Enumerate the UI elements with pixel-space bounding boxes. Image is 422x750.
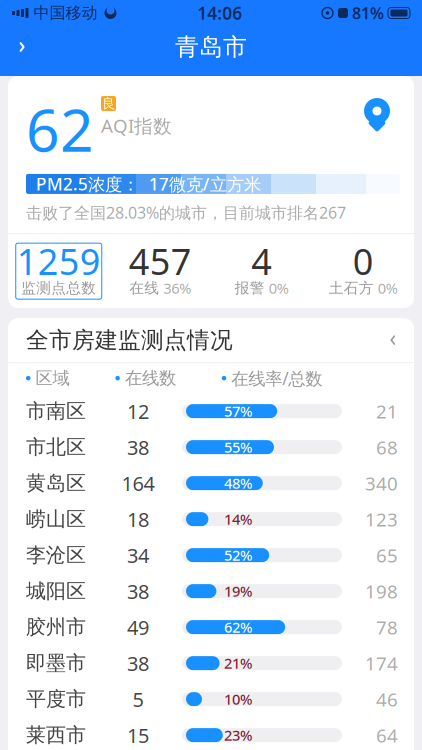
staticText: 良	[102, 95, 115, 112]
staticText: 4	[251, 237, 272, 285]
staticText: 457	[129, 237, 192, 285]
staticText: 18	[127, 506, 149, 532]
staticText: 340	[365, 471, 398, 496]
staticText: 崂山区	[26, 507, 86, 531]
staticText: PM2.5浓度： 17微克/立方米	[36, 172, 261, 195]
staticText: 土石方	[329, 279, 374, 297]
staticText: 81%	[352, 2, 384, 24]
staticText: 击败了全国28.03%的城市，目前城市排名267	[26, 202, 346, 223]
staticText: 即墨市	[26, 651, 86, 675]
staticText: 区域	[35, 367, 69, 389]
staticText: 市南区	[26, 399, 86, 423]
staticText: 15	[127, 722, 149, 748]
staticText: 198	[365, 579, 398, 604]
staticText: 城阳区	[26, 579, 86, 603]
staticText: 65	[376, 543, 398, 568]
staticText: 监测点总数	[21, 279, 96, 297]
staticText: 14:06	[197, 1, 242, 24]
staticText: 23%	[224, 725, 252, 745]
staticText: 52%	[224, 545, 252, 565]
staticText: 报警	[235, 279, 265, 297]
staticText: 1259	[17, 237, 101, 285]
staticText: 62	[26, 90, 94, 168]
staticText: 19%	[224, 581, 252, 601]
staticText: 21%	[224, 653, 252, 673]
staticText: 34	[127, 542, 149, 568]
staticText: 0%	[269, 278, 289, 298]
staticText: 14%	[224, 509, 252, 529]
staticText: 平度市	[26, 687, 86, 711]
staticText: 21	[376, 399, 398, 424]
staticText: 胶州市	[26, 615, 86, 639]
staticText: 李沧区	[26, 543, 86, 567]
staticText: 38	[127, 434, 149, 460]
staticText: 123	[365, 507, 398, 532]
staticText: 78	[376, 615, 398, 640]
staticText: 36%	[163, 278, 191, 298]
staticText: 48%	[224, 473, 252, 493]
staticText: 164	[121, 470, 154, 496]
staticText: 10%	[224, 689, 252, 709]
staticText: 64	[376, 723, 398, 748]
staticText: 38	[127, 578, 149, 604]
staticText: 莱西市	[26, 723, 86, 747]
staticText: 174	[365, 651, 398, 676]
staticText: 0%	[378, 278, 398, 298]
staticText: 49	[127, 614, 149, 640]
staticText: 全市房建监测点情况	[26, 326, 233, 354]
staticText: 中国移动	[33, 3, 97, 23]
staticText: 黄岛区	[26, 471, 86, 495]
staticText: 市北区	[26, 435, 86, 459]
staticText: 在线率/总数	[231, 367, 322, 390]
staticText: 46	[376, 687, 398, 712]
staticText: 青岛市	[175, 32, 247, 62]
staticText: 在线数	[125, 367, 176, 389]
staticText: 57%	[224, 401, 252, 421]
staticText: 0	[353, 237, 374, 285]
staticText: 62%	[224, 617, 252, 637]
staticText: 在线	[129, 279, 159, 297]
staticText: 5	[132, 686, 143, 712]
staticText: 55%	[224, 437, 252, 457]
button[interactable]: 全市房建监测点情况	[8, 318, 414, 362]
staticText: 38	[127, 650, 149, 676]
staticText: 12	[127, 398, 149, 424]
staticText: 68	[376, 435, 398, 460]
staticText: AQI指数	[101, 113, 172, 138]
button[interactable]: Back	[0, 27, 44, 67]
